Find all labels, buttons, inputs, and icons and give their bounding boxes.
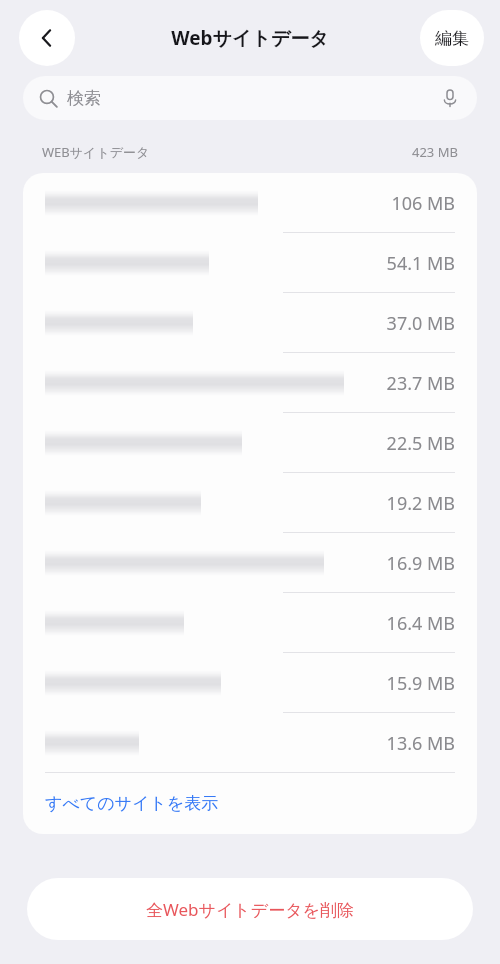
button[interactable]: 15.9 MB bbox=[23, 653, 477, 713]
staticText: 37.0 MB bbox=[386, 311, 455, 336]
staticText: WEBサイトデータ bbox=[42, 143, 150, 161]
staticText: 編集 bbox=[435, 28, 469, 49]
button[interactable]: 編集 bbox=[420, 10, 484, 66]
button[interactable]: 16.9 MB bbox=[23, 533, 477, 593]
button[interactable]: 検索 bbox=[23, 76, 477, 120]
button[interactable]: Voice search bbox=[439, 87, 461, 109]
button[interactable]: 13.6 MB bbox=[23, 713, 477, 773]
button[interactable]: 22.5 MB bbox=[23, 413, 477, 473]
staticText: 13.6 MB bbox=[386, 731, 455, 756]
staticText: 16.9 MB bbox=[386, 551, 455, 576]
staticText: すべてのサイトを表示 bbox=[45, 793, 219, 814]
staticText: 16.4 MB bbox=[386, 611, 455, 636]
button[interactable]: 106 MB bbox=[23, 173, 477, 233]
button[interactable]: 19.2 MB bbox=[23, 473, 477, 533]
staticText: 22.5 MB bbox=[386, 431, 455, 456]
button[interactable]: 16.4 MB bbox=[23, 593, 477, 653]
button[interactable]: 54.1 MB bbox=[23, 233, 477, 293]
staticText: 423 MB bbox=[412, 143, 458, 161]
button[interactable]: 37.0 MB bbox=[23, 293, 477, 353]
staticText: 54.1 MB bbox=[386, 251, 455, 276]
button[interactable]: 23.7 MB bbox=[23, 353, 477, 413]
staticText: 106 MB bbox=[391, 191, 455, 216]
button[interactable]: Back bbox=[19, 10, 75, 66]
button[interactable]: 全Webサイトデータを削除 bbox=[27, 878, 473, 940]
staticText: 検索 bbox=[67, 88, 101, 109]
staticText: 19.2 MB bbox=[386, 491, 455, 516]
staticText: 15.9 MB bbox=[386, 671, 455, 696]
staticText: 全Webサイトデータを削除 bbox=[146, 898, 354, 921]
staticText: Webサイトデータ bbox=[171, 25, 329, 51]
staticText: 23.7 MB bbox=[386, 371, 455, 396]
button[interactable]: すべてのサイトを表示 bbox=[23, 773, 477, 834]
